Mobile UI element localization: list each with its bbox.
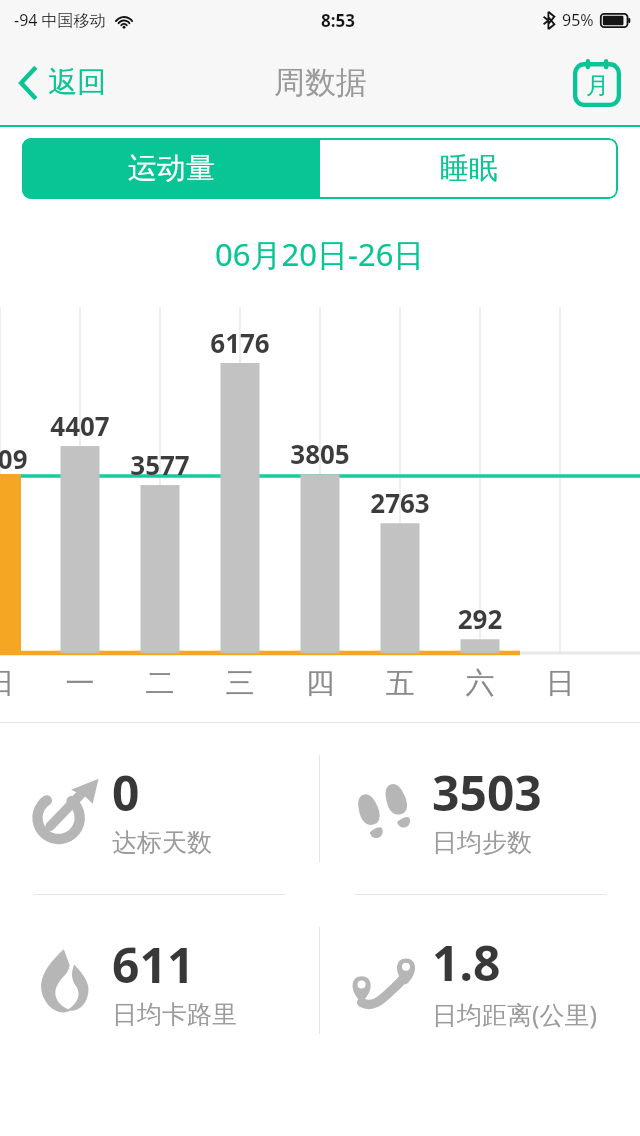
staticText: 0 [112, 760, 140, 825]
staticText: 日均卡路里 [112, 999, 237, 1030]
staticText: 达标天数 [112, 827, 212, 858]
button[interactable]: 日均卡路里 [0, 895, 319, 1066]
staticText: 3577 [120, 447, 200, 482]
other: 日均步数 [344, 767, 428, 851]
button[interactable]: 切换到月数据 [564, 50, 630, 116]
other: 达标天数 [24, 767, 108, 851]
other: 日均卡路里 [24, 939, 108, 1023]
staticText: 1.8 [432, 930, 501, 995]
staticText: 返回 [48, 64, 106, 101]
staticText: 6176 [200, 325, 280, 360]
button[interactable]: 日均距离 [320, 895, 640, 1066]
other: 日均距离 [344, 939, 428, 1023]
staticText: 四 [280, 665, 360, 702]
staticText: 日 [0, 665, 40, 702]
staticText: 运动量 [128, 150, 215, 187]
staticText: 睡眠 [440, 150, 498, 187]
staticText: 月 [586, 71, 609, 100]
staticText: 4407 [40, 408, 120, 443]
button[interactable]: 日均步数 [320, 723, 640, 894]
staticText: 日均步数 [432, 827, 532, 858]
staticText: 95% [562, 9, 594, 31]
staticText: 周数据 [274, 63, 367, 102]
staticText: 三 [200, 665, 280, 702]
staticText: 日均距离(公里) [432, 997, 598, 1031]
staticText: 06月20日-26日 [215, 233, 425, 275]
staticText: 一 [40, 665, 120, 702]
staticText: -94 中国移动 [14, 9, 106, 31]
button[interactable]: 达标天数 [0, 723, 319, 894]
staticText: 292 [440, 601, 520, 636]
staticText: 六 [440, 665, 520, 702]
staticText: 8:53 [321, 9, 355, 32]
staticText: 二 [120, 665, 200, 702]
staticText: 3805 [280, 436, 360, 471]
button[interactable]: 睡眠 [320, 138, 618, 199]
button[interactable]: 返回 [8, 54, 116, 111]
staticText: 2763 [360, 485, 440, 520]
staticText: 3503 [432, 760, 542, 825]
staticText: 609 [0, 441, 28, 476]
staticText: 五 [360, 665, 440, 702]
button[interactable]: 运动量 [22, 138, 320, 199]
staticText: 611 [112, 932, 195, 997]
staticText: 日 [520, 665, 600, 702]
